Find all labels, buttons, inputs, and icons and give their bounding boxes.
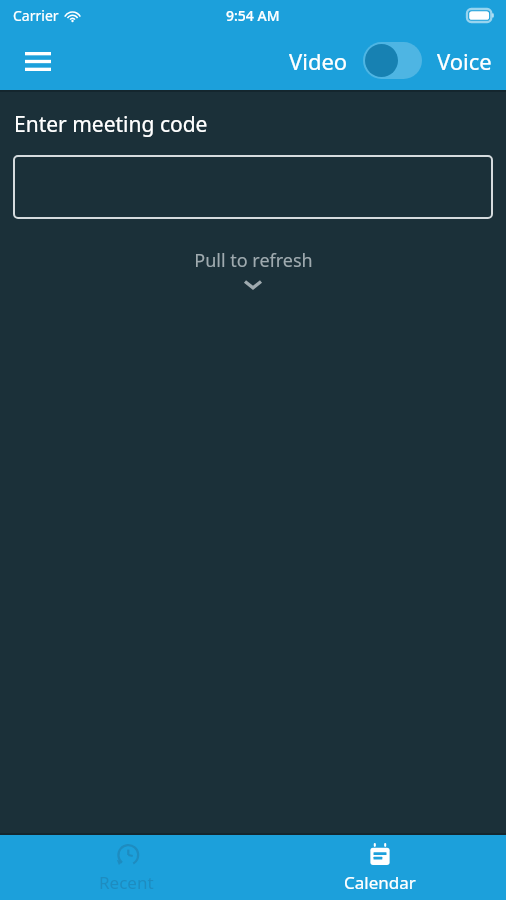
button[interactable]: Video — [289, 46, 348, 76]
button[interactable]: Toggle video or voice — [363, 42, 422, 79]
staticText: Pull to refresh — [194, 248, 313, 273]
button[interactable]: Meeting code input — [13, 155, 493, 219]
staticText: Enter meeting code — [14, 110, 208, 139]
staticText: Carrier — [13, 6, 59, 25]
staticText: 9:54 AM — [226, 6, 280, 25]
button[interactable]: Menu — [16, 39, 60, 83]
staticText: Calendar — [344, 871, 416, 894]
staticText: Recent — [99, 871, 154, 894]
button[interactable]: Calendar — [253, 835, 506, 900]
button[interactable]: Voice — [437, 46, 492, 76]
button[interactable]: Recent — [0, 835, 253, 900]
